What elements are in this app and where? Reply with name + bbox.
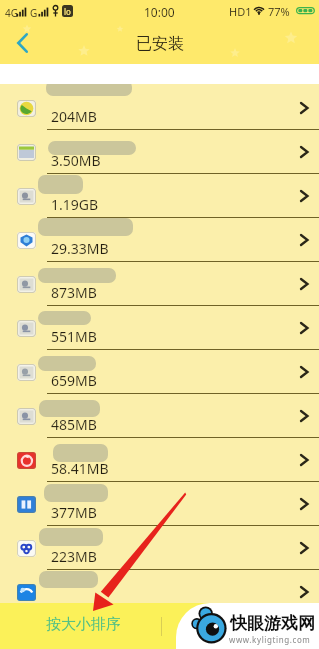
staticText: 659MB xyxy=(51,371,97,390)
staticText: 223MB xyxy=(51,547,97,566)
staticText: 按时间排序 xyxy=(203,618,278,637)
staticText: 204MB xyxy=(51,107,97,126)
staticText: 377MB xyxy=(51,503,97,522)
button[interactable]: 3.50MB xyxy=(0,130,319,174)
button[interactable]: Back xyxy=(4,22,40,64)
staticText: 485MB xyxy=(51,415,97,434)
button[interactable]: 按大小排序 xyxy=(0,603,161,649)
button[interactable]: 223MB xyxy=(0,526,319,570)
staticText: 10:00 xyxy=(144,4,175,20)
staticText: 已安装 xyxy=(136,34,184,54)
staticText: 873MB xyxy=(51,283,97,302)
button[interactable]: 204MB xyxy=(0,86,319,130)
staticText: www.kyligting.com xyxy=(229,634,311,645)
staticText: lo xyxy=(64,6,71,17)
staticText: 58.41MB xyxy=(51,459,109,478)
staticText: 77% xyxy=(268,4,290,19)
button[interactable]: 659MB xyxy=(0,350,319,394)
button[interactable] xyxy=(0,570,319,614)
button[interactable]: 58.41MB xyxy=(0,438,319,482)
button[interactable]: 377MB xyxy=(0,482,319,526)
staticText: HD1 xyxy=(229,4,252,19)
staticText: 29.33MB xyxy=(51,239,109,258)
staticText: 3.50MB xyxy=(51,151,101,170)
button[interactable]: 29.33MB xyxy=(0,218,319,262)
staticText: G xyxy=(30,6,38,20)
staticText: 551MB xyxy=(51,327,97,346)
staticText: 快眼游戏网 xyxy=(230,613,315,634)
staticText: 4G xyxy=(5,6,18,20)
button[interactable]: 1.19GB xyxy=(0,174,319,218)
button[interactable]: 551MB xyxy=(0,306,319,350)
staticText: 1.19GB xyxy=(51,195,99,214)
button[interactable]: 485MB xyxy=(0,394,319,438)
button[interactable]: 873MB xyxy=(0,262,319,306)
button[interactable]: 按时间排序 xyxy=(162,603,319,649)
staticText: 按大小排序 xyxy=(46,615,121,634)
